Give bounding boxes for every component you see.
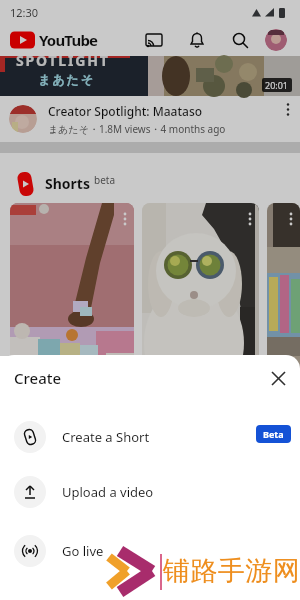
button[interactable] bbox=[10, 203, 134, 373]
button[interactable] bbox=[231, 31, 249, 49]
button[interactable] bbox=[271, 371, 286, 386]
staticText: 12:30 bbox=[10, 5, 39, 20]
staticText: Create bbox=[14, 368, 62, 388]
button[interactable]: Creator Spotlight: Maataso bbox=[0, 96, 300, 142]
staticText: beta bbox=[94, 173, 116, 187]
staticText: Go live bbox=[62, 542, 104, 560]
staticText: まあたそ bbox=[38, 72, 96, 87]
staticText: Shorts bbox=[45, 174, 90, 193]
staticText: Create a Short bbox=[62, 428, 150, 446]
staticText: 20:01 bbox=[265, 79, 289, 91]
staticText: 铺路手游网 bbox=[163, 554, 300, 588]
button[interactable] bbox=[188, 31, 206, 49]
staticText: まあたそ・1.8M views・4 months ago bbox=[48, 122, 226, 136]
button[interactable] bbox=[281, 103, 295, 117]
staticText: Creator Spotlight: Maataso bbox=[48, 103, 203, 119]
button[interactable]: SPOTLIGHT bbox=[0, 56, 300, 96]
button[interactable] bbox=[145, 31, 163, 49]
staticText: Beta bbox=[263, 428, 284, 440]
staticText: Upload a video bbox=[62, 483, 154, 501]
button[interactable] bbox=[267, 203, 300, 373]
button[interactable] bbox=[142, 203, 259, 373]
button[interactable]: Go live bbox=[0, 535, 300, 567]
button[interactable] bbox=[265, 29, 287, 51]
button[interactable]: Create a Short bbox=[0, 421, 300, 453]
staticText: YouTube bbox=[39, 30, 98, 50]
button[interactable]: YouTube bbox=[10, 30, 98, 50]
button[interactable]: Upload a video bbox=[0, 476, 300, 508]
staticText: SPOTLIGHT bbox=[16, 51, 110, 70]
